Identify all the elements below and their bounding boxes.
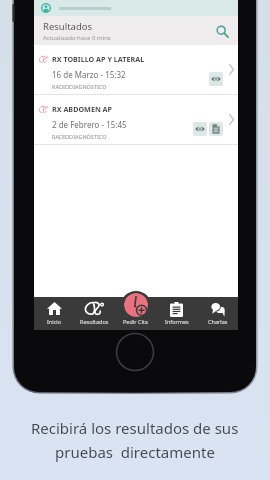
button[interactable]: Inicio — [34, 297, 74, 330]
staticText: Informes — [165, 318, 189, 325]
staticText: Resultados — [43, 20, 93, 33]
staticText: Resultados — [80, 318, 109, 325]
staticText: pruebas directamente — [55, 442, 215, 462]
staticText: Actualizado hace 0 mins — [43, 34, 111, 42]
staticText: RADIODIAGNÓSTICO — [52, 133, 107, 140]
staticText: RX ABDOMEN AP — [52, 104, 113, 114]
button[interactable]: Buscar — [213, 22, 231, 40]
staticText: Pedir Cita — [123, 318, 148, 325]
staticText: RX TOBILLO AP Y LATERAL — [52, 54, 145, 64]
staticText: Charlas — [208, 318, 228, 325]
staticText: RADIODIAGNÓSTICO — [52, 83, 107, 90]
button[interactable]: Ver — [193, 122, 207, 136]
button[interactable]: Charlas — [197, 297, 238, 330]
staticText: 2 de Febrero - 15:45 — [52, 119, 127, 130]
button[interactable]: RX ABDOMEN AP — [34, 95, 238, 144]
staticText: Inicio — [47, 318, 62, 325]
other: Abrir — [229, 64, 234, 75]
button[interactable]: Ver — [209, 72, 223, 86]
other: Abrir — [229, 114, 234, 125]
staticText: 16 de Marzo - 15:32 — [52, 69, 126, 80]
staticText: Recibirá los resultados de sus — [31, 418, 239, 438]
button[interactable]: RX TOBILLO AP Y LATERAL — [34, 45, 238, 94]
button[interactable]: Informe — [209, 122, 223, 136]
button[interactable]: Pedir Cita — [124, 293, 148, 317]
button[interactable]: Resultados — [74, 297, 115, 330]
button[interactable]: Informes — [156, 297, 197, 330]
